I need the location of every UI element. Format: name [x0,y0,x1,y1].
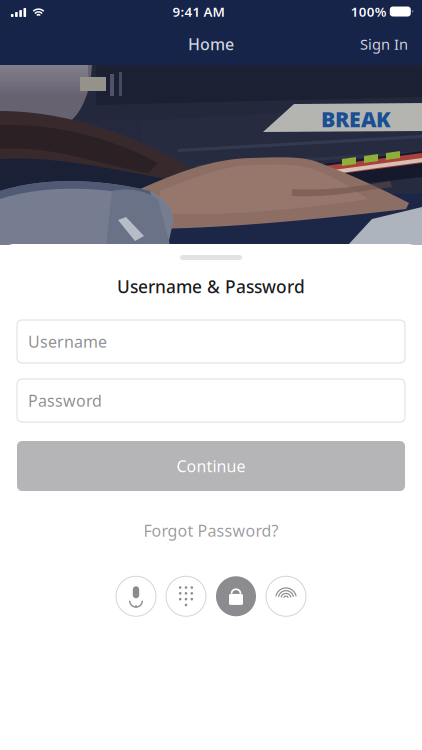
staticText: 100% [351,3,387,20]
button[interactable]: Sign In [346,25,422,63]
staticText: Continue [176,455,245,477]
button[interactable]: Fingerprint sign in [265,575,307,617]
staticText: Home [188,33,234,55]
staticText: Password [28,390,102,411]
staticText: Username & Password [117,275,305,298]
staticText: Username [28,331,107,352]
staticText: Forgot Password? [143,520,278,541]
staticText: BREAK [321,105,391,133]
button[interactable]: Voice sign in [115,575,157,617]
staticText: 9:41 AM [172,3,224,20]
button[interactable]: Username [17,320,405,363]
button[interactable]: Password [17,379,405,422]
staticText: Sign In [360,34,408,54]
button[interactable]: Forgot Password? [131,513,290,548]
button[interactable]: Password sign in [215,575,257,617]
button[interactable]: PIN keypad [165,575,207,617]
button[interactable]: Continue [17,441,405,491]
